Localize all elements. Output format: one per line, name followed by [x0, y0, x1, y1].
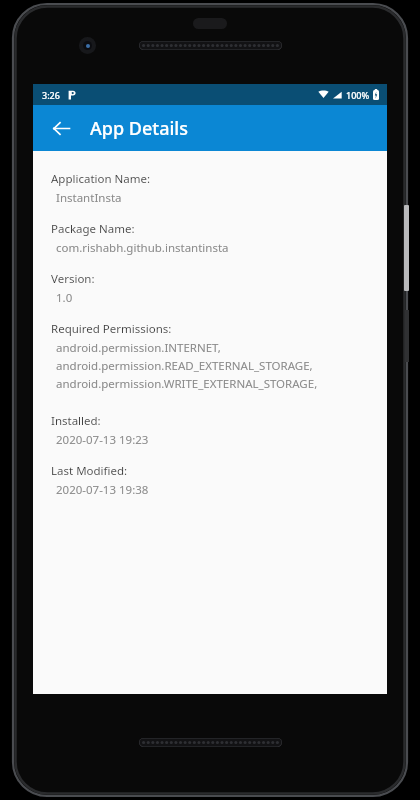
staticText: InstantInsta [56, 190, 122, 206]
staticText: com.rishabh.github.instantinsta [56, 240, 229, 256]
staticText: App Details [90, 116, 188, 141]
staticText: android.permission.WRITE_EXTERNAL_STORAG… [56, 376, 318, 392]
staticText: android.permission.INTERNET, [56, 340, 221, 356]
button[interactable]: Back [42, 109, 80, 147]
staticText: Application Name: [51, 171, 151, 187]
staticText: 3:26 [42, 89, 60, 101]
staticText: Last Modified: [51, 463, 128, 479]
staticText: Required Permissions: [51, 321, 172, 337]
staticText: Version: [51, 271, 95, 287]
staticText: 2020-07-13 19:38 [56, 482, 149, 498]
staticText: Package Name: [51, 221, 135, 237]
staticText: 100% [346, 89, 370, 101]
staticText: Installed: [51, 413, 101, 429]
staticText: 2020-07-13 19:23 [56, 432, 149, 448]
staticText: android.permission.READ_EXTERNAL_STORAGE… [56, 358, 313, 374]
staticText: 1.0 [56, 290, 73, 306]
